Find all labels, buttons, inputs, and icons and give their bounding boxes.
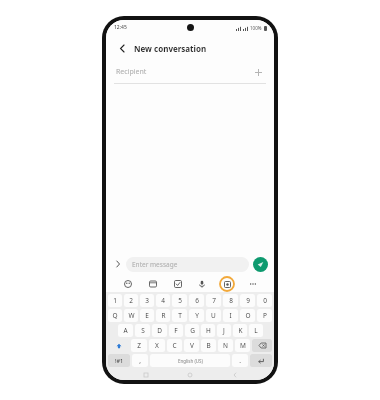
button[interactable]: Send — [253, 257, 268, 272]
staticText: P — [263, 311, 267, 320]
button[interactable]: 6 — [189, 294, 204, 307]
button[interactable]: Q — [108, 309, 122, 322]
button[interactable]: X — [149, 339, 165, 352]
button[interactable]: Back — [115, 41, 129, 55]
staticText: C — [172, 341, 177, 350]
button[interactable]: B — [201, 339, 216, 352]
button[interactable]: A — [118, 324, 133, 337]
staticText: W — [128, 311, 135, 320]
button[interactable]: Shift — [108, 339, 129, 352]
button[interactable]: Stickers — [120, 276, 135, 291]
staticText: M — [240, 341, 246, 350]
staticText: English (US) — [178, 358, 203, 364]
button[interactable]: K — [233, 324, 247, 337]
staticText: D — [157, 326, 162, 335]
staticText: S — [141, 326, 145, 335]
staticText: H — [206, 326, 211, 335]
button[interactable]: C — [167, 339, 182, 352]
button[interactable]: E — [140, 309, 154, 322]
button[interactable]: F — [169, 324, 183, 337]
button[interactable]: Tasks — [170, 276, 185, 291]
staticText: New conversation — [134, 43, 207, 54]
staticText: O — [245, 311, 251, 320]
staticText: N — [223, 341, 228, 350]
button[interactable]: L — [249, 324, 263, 337]
staticText: Z — [137, 341, 141, 350]
button[interactable]: 7 — [206, 294, 221, 307]
button[interactable]: I — [223, 309, 238, 322]
button[interactable]: Recipient — [106, 61, 274, 83]
button[interactable]: V — [184, 339, 199, 352]
button[interactable]: Expand — [112, 258, 124, 270]
staticText: 100% — [250, 25, 262, 31]
staticText: 3 — [145, 296, 149, 305]
staticText: I — [229, 311, 232, 320]
staticText: Enter message — [132, 260, 178, 269]
button[interactable]: 3 — [140, 294, 154, 307]
staticText: U — [211, 311, 216, 320]
staticText: 5 — [178, 296, 182, 305]
staticText: X — [155, 341, 159, 350]
button[interactable]: G — [185, 324, 199, 337]
staticText: , — [139, 356, 141, 365]
button[interactable]: English (US) — [150, 354, 230, 367]
staticText: J — [223, 326, 225, 335]
staticText: Recipient — [116, 67, 252, 77]
button[interactable]: S — [135, 324, 150, 337]
staticText: 6 — [195, 296, 199, 305]
button[interactable]: , — [132, 354, 148, 367]
staticText: 1 — [113, 296, 117, 305]
button[interactable]: . — [232, 354, 248, 367]
button[interactable]: Z — [131, 339, 147, 352]
button[interactable]: N — [218, 339, 233, 352]
button[interactable]: J — [217, 324, 231, 337]
button[interactable]: Add recipient — [252, 66, 264, 78]
staticText: 8 — [229, 296, 233, 305]
button[interactable]: 2 — [124, 294, 138, 307]
staticText: Y — [195, 311, 199, 320]
button[interactable]: 8 — [223, 294, 238, 307]
button[interactable]: 9 — [240, 294, 255, 307]
button[interactable]: P — [257, 309, 272, 322]
button[interactable]: W — [124, 309, 138, 322]
staticText: B — [206, 341, 211, 350]
button[interactable]: 5 — [172, 294, 187, 307]
button[interactable]: 1 — [108, 294, 122, 307]
button[interactable]: 0 — [257, 294, 272, 307]
staticText: K — [238, 326, 243, 335]
button[interactable]: Recents — [141, 370, 151, 380]
staticText: G — [190, 326, 195, 335]
button[interactable]: Backspace — [252, 339, 272, 352]
staticText: 0 — [263, 296, 267, 305]
button[interactable]: Settings — [219, 276, 235, 292]
button[interactable]: Enter — [250, 354, 272, 367]
button[interactable]: Voice — [194, 276, 209, 291]
button[interactable]: 4 — [156, 294, 170, 307]
staticText: F — [174, 326, 178, 335]
staticText: 4 — [161, 296, 165, 305]
button[interactable]: D — [152, 324, 167, 337]
staticText: R — [161, 311, 166, 320]
staticText: Q — [112, 311, 118, 320]
staticText: E — [145, 311, 149, 320]
button[interactable]: R — [156, 309, 170, 322]
staticText: V — [190, 341, 194, 350]
staticText: T — [178, 311, 182, 320]
staticText: 2 — [129, 296, 133, 305]
button[interactable]: Home — [185, 370, 195, 380]
staticText: A — [123, 326, 128, 335]
button[interactable]: O — [240, 309, 255, 322]
button[interactable]: Y — [189, 309, 204, 322]
button[interactable]: !#1 — [108, 354, 130, 367]
button[interactable]: T — [172, 309, 187, 322]
button[interactable]: M — [235, 339, 250, 352]
staticText: 7 — [212, 296, 216, 305]
button[interactable]: Back — [230, 370, 240, 380]
staticText: 12:45 — [114, 24, 127, 31]
staticText: . — [239, 356, 241, 365]
button[interactable]: U — [206, 309, 221, 322]
button[interactable]: H — [201, 324, 215, 337]
button[interactable]: Enter message — [126, 257, 249, 272]
button[interactable]: More — [245, 276, 260, 291]
button[interactable]: Gallery — [145, 276, 160, 291]
